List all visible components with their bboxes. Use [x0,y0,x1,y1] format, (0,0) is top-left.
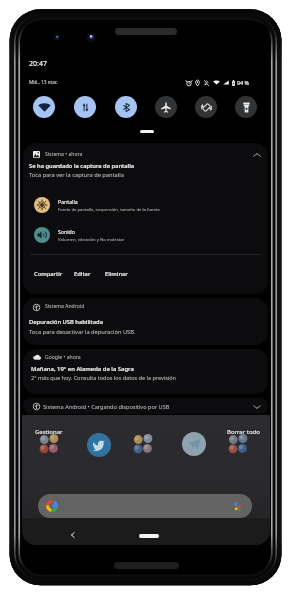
button[interactable] [23,298,268,345]
button[interactable]: Carpeta de aplicaciones [226,432,252,458]
button[interactable]: Bluetooth [115,96,137,118]
staticText: Compartir [34,270,63,278]
staticText: Fondo de pantalla, suspensión, tamaño de… [58,207,160,213]
button[interactable]: Contraer notificación [253,152,261,158]
staticText: Gestionar [35,428,63,436]
staticText: Toca para desactivar la depuración USB. [29,328,136,336]
staticText: Mié., 13 mar. [29,79,58,86]
button[interactable]: Gestionar [32,425,66,439]
button[interactable]: Telegram [182,432,206,456]
button[interactable]: Inicio [139,534,159,538]
button[interactable]: Expandir notificación [253,404,261,410]
staticText: Volumen, vibración y No molestar [58,237,125,243]
button[interactable] [23,349,268,394]
staticText: Depuración USB habilitada [29,318,103,326]
button[interactable]: Pantalla [34,196,259,214]
staticText: 20:47 [29,59,47,69]
staticText: Sonido [58,228,75,235]
staticText: Mañana, 19° en Alameda de la Sagra [31,365,134,373]
staticText: Se ha guardado la captura de pantalla [29,162,135,170]
button[interactable]: Carpeta de aplicaciones [131,432,157,458]
staticText: Pantalla [58,198,78,205]
button[interactable]: Eliminar [101,267,132,281]
button[interactable] [23,398,268,414]
button[interactable]: Rotación automática [195,96,217,118]
button[interactable]: Datos móviles [74,96,96,118]
button[interactable]: Sonido [34,226,259,244]
staticText: 94 % [237,79,249,86]
button[interactable]: Carpeta de aplicaciones [37,432,63,458]
button[interactable]: Compartir [30,267,67,281]
button[interactable]: Buscar con Google [38,494,252,518]
button[interactable]: Linterna [235,96,257,118]
staticText: Eliminar [105,270,128,278]
button[interactable]: Editar [70,267,95,281]
staticText: Google • ahora [45,354,81,361]
staticText: Sistema Android [45,303,85,310]
staticText: Toca para ver la captura de pantalla [29,171,124,179]
button[interactable]: Atrás [69,531,77,539]
button[interactable]: Borrar todo [224,425,263,439]
staticText: Sistema • ahora [45,151,83,158]
staticText: 2° más que hoy. Consulta todos los datos… [31,374,176,381]
staticText: Editar [74,270,91,278]
button[interactable]: Wi-Fi [33,96,55,118]
button[interactable]: Twitter [87,433,111,457]
button[interactable]: Modo avión [155,96,177,118]
staticText: Borrar todo [227,428,260,436]
staticText: Sistema Android • Cargando dispositivo p… [43,403,170,411]
button[interactable] [23,143,268,294]
